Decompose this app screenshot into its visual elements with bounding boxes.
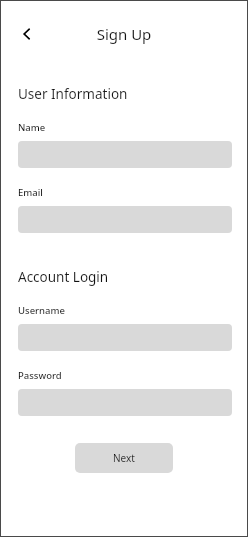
staticText: Next xyxy=(113,451,135,465)
staticText: Name xyxy=(18,121,46,134)
staticText: Email xyxy=(18,186,43,199)
staticText: Sign Up xyxy=(1,24,247,44)
staticText: Account Login xyxy=(18,268,109,286)
staticText: Password xyxy=(18,369,62,382)
button[interactable]: Next xyxy=(75,443,173,473)
staticText: User Information xyxy=(18,85,128,103)
button[interactable]: Back xyxy=(12,19,42,49)
staticText: Username xyxy=(18,304,65,317)
